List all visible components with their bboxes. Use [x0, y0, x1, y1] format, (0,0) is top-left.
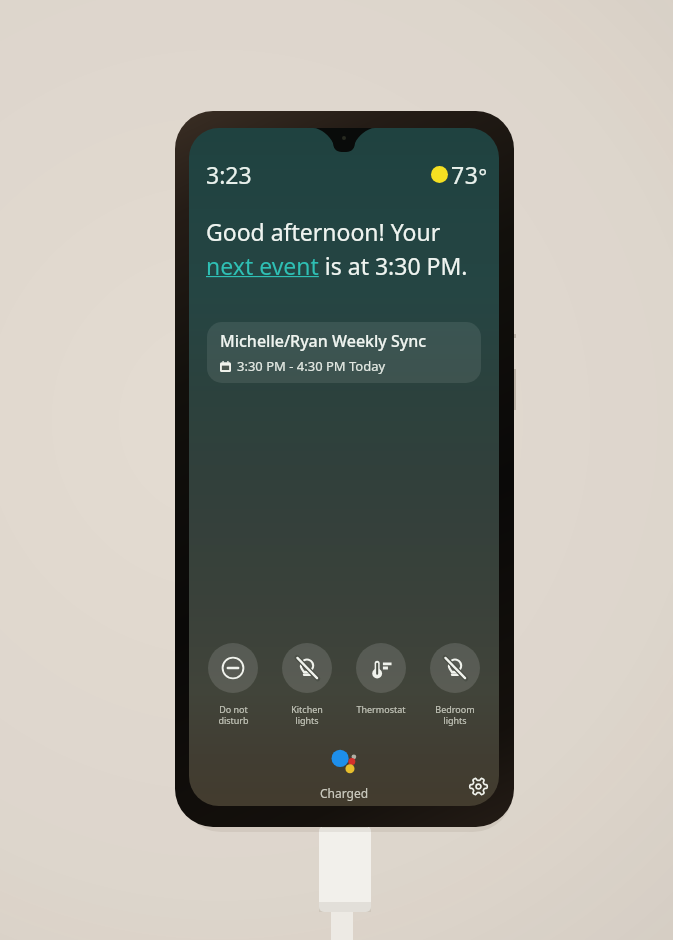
button[interactable]: next event — [206, 244, 318, 269]
staticText: Thermostat — [356, 703, 406, 715]
staticText: 73° — [451, 159, 488, 190]
button[interactable]: Bedroom lights — [423, 643, 487, 727]
button[interactable]: Thermostat — [349, 643, 413, 715]
staticText: Bedroom lights — [435, 703, 475, 727]
staticText: 3:23 — [206, 159, 252, 190]
button[interactable]: Do not disturb — [201, 643, 265, 727]
button[interactable]: Settings — [458, 766, 498, 806]
staticText: Do not disturb — [218, 703, 249, 727]
staticText: Charged — [320, 785, 369, 801]
staticText: Good afternoon! Your next event is at 3:… — [206, 216, 468, 281]
staticText: Michelle/Ryan Weekly Sync — [220, 330, 427, 352]
button[interactable]: Michelle/Ryan Weekly Sync — [207, 322, 481, 383]
staticText: 3:30 PM - 4:30 PM Today — [237, 357, 386, 375]
button[interactable]: Talk to Google Assistant — [327, 744, 361, 778]
button[interactable]: Kitchen lights — [275, 643, 339, 727]
staticText: Kitchen lights — [291, 703, 323, 727]
